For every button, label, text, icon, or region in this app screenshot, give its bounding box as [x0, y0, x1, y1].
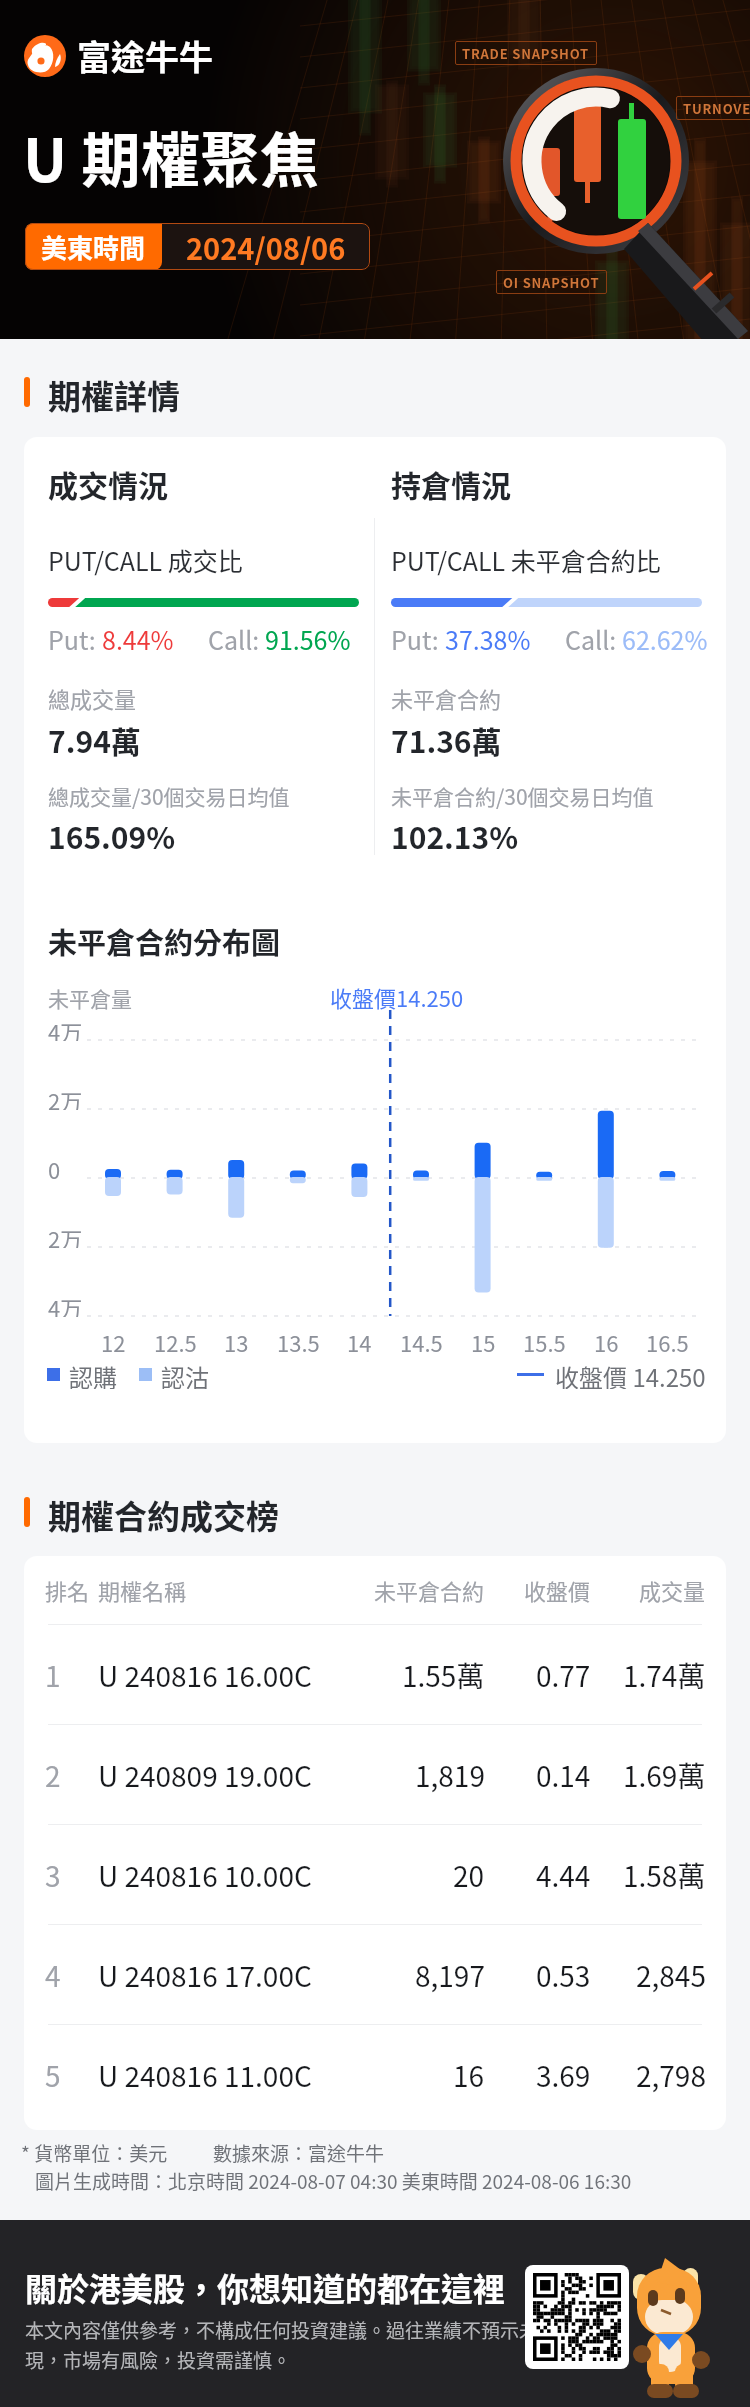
staticText: Call:	[208, 621, 265, 657]
button[interactable]: 4	[24, 1925, 726, 2025]
staticText: 期權合約成交榜	[48, 1491, 279, 1539]
staticText: 7.94萬	[48, 718, 141, 761]
staticText: PUT/CALL 未平倉合約比	[391, 542, 661, 578]
staticText: 總成交量/30個交易日均值	[48, 781, 290, 811]
staticText: 2,798	[636, 2055, 706, 2096]
staticText: 0.14	[536, 1755, 591, 1796]
staticText: 8.44%	[102, 621, 174, 657]
staticText: 1,819	[415, 1755, 485, 1796]
staticText: TURNOVER	[683, 99, 750, 118]
staticText: 37.38%	[445, 621, 531, 657]
staticText: 0	[48, 1153, 61, 1179]
staticText: 71.36萬	[391, 718, 502, 761]
staticText: 4.44	[536, 1855, 591, 1896]
staticText: 收盤價 14.250	[555, 1359, 706, 1389]
staticText: 14	[347, 1326, 372, 1352]
staticText: * 貨幣單位：美元	[21, 2139, 168, 2167]
button[interactable]: 5	[24, 2025, 726, 2125]
button[interactable]: 美東時間	[25, 223, 370, 270]
staticText: 1.69萬	[623, 1755, 706, 1796]
staticText: 16.5	[646, 1326, 689, 1352]
staticText: 未平倉合約/30個交易日均值	[391, 781, 654, 811]
staticText: 4万	[48, 1291, 83, 1317]
staticText: 未平倉合約	[391, 682, 502, 714]
staticText: 15.5	[523, 1326, 566, 1352]
staticText: 1.74萬	[623, 1655, 706, 1696]
staticText: 2,845	[636, 1955, 706, 1996]
staticText: 20	[453, 1855, 485, 1896]
staticText: 成交量	[639, 1574, 706, 1606]
staticText: 收盤價	[524, 1574, 591, 1606]
staticText: 62.62%	[622, 621, 708, 657]
staticText: 成交情況	[48, 462, 168, 505]
staticText: 12	[101, 1326, 126, 1352]
staticText: 16	[453, 2055, 485, 2096]
staticText: 16	[594, 1326, 619, 1352]
staticText: 1	[45, 1655, 61, 1696]
staticText: 認購	[69, 1359, 117, 1389]
staticText: 0.77	[536, 1655, 591, 1696]
staticText: 期權詳情	[48, 371, 180, 419]
staticText: 2万	[48, 1084, 83, 1110]
staticText: U 240816 17.00C	[98, 1955, 312, 1996]
staticText: 4万	[48, 1015, 83, 1041]
staticText: 1.58萬	[623, 1855, 706, 1896]
staticText: 收盤價14.250	[330, 981, 464, 1013]
staticText: 未平倉合約	[374, 1574, 485, 1606]
staticText: 13	[224, 1326, 249, 1352]
staticText: TRADE SNAPSHOT	[462, 44, 590, 63]
staticText: 美東時間	[41, 228, 146, 266]
staticText: U 240816 11.00C	[98, 2055, 312, 2096]
staticText: U 期權聚焦	[23, 114, 320, 199]
staticText: 13.5	[277, 1326, 320, 1352]
button[interactable]: 1	[24, 1625, 726, 1725]
staticText: Put:	[391, 621, 445, 657]
staticText: 未平倉量	[48, 983, 132, 1013]
staticText: 8,197	[415, 1955, 485, 1996]
staticText: 165.09%	[48, 814, 176, 857]
staticText: U 240816 16.00C	[98, 1655, 312, 1696]
staticText: 2	[45, 1755, 61, 1796]
staticText: Call:	[565, 621, 622, 657]
staticText: 富途牛牛	[77, 31, 213, 80]
staticText: 期權名稱	[98, 1574, 187, 1606]
staticText: 14.5	[400, 1326, 443, 1352]
staticText: 圖片生成時間：北京時間 2024-08-07 04:30 美東時間 2024-0…	[35, 2167, 632, 2195]
staticText: 數據來源：富途牛牛	[213, 2139, 385, 2167]
button[interactable]: 2	[24, 1725, 726, 1825]
button[interactable]: 富途牛牛 logo	[24, 31, 213, 80]
staticText: 3	[45, 1855, 61, 1896]
staticText: 總成交量	[48, 682, 137, 714]
button[interactable]: 3	[24, 1825, 726, 1925]
staticText: 2万	[48, 1222, 83, 1248]
staticText: Put:	[48, 621, 102, 657]
staticText: 1.55萬	[402, 1655, 485, 1696]
staticText: 5	[45, 2055, 61, 2096]
staticText: 排名	[45, 1574, 90, 1606]
staticText: OI SNAPSHOT	[503, 273, 600, 292]
staticText: 持倉情況	[391, 462, 511, 505]
staticText: 15	[471, 1326, 496, 1352]
staticText: 102.13%	[391, 814, 519, 857]
staticText: 0.53	[536, 1955, 591, 1996]
staticText: U 240816 10.00C	[98, 1855, 312, 1896]
staticText: 12.5	[154, 1326, 197, 1352]
staticText: 現，市場有風險，投資需謹慎。	[25, 2346, 292, 2374]
staticText: 4	[45, 1955, 61, 1996]
staticText: 3.69	[536, 2055, 591, 2096]
other: 富途牛牛 logo	[24, 35, 66, 77]
staticText: 2024/08/06	[186, 226, 346, 268]
staticText: 認沽	[161, 1359, 209, 1389]
staticText: 本文內容僅供參考，不構成任何投資建議。過往業績不預示未來表	[25, 2316, 577, 2344]
staticText: 關於港美股，你想知道的都在這裡	[25, 2264, 506, 2310]
staticText: 未平倉合約分布圖	[48, 920, 281, 962]
staticText: 91.56%	[265, 621, 351, 657]
staticText: PUT/CALL 成交比	[48, 542, 243, 578]
staticText: U 240809 19.00C	[98, 1755, 312, 1796]
